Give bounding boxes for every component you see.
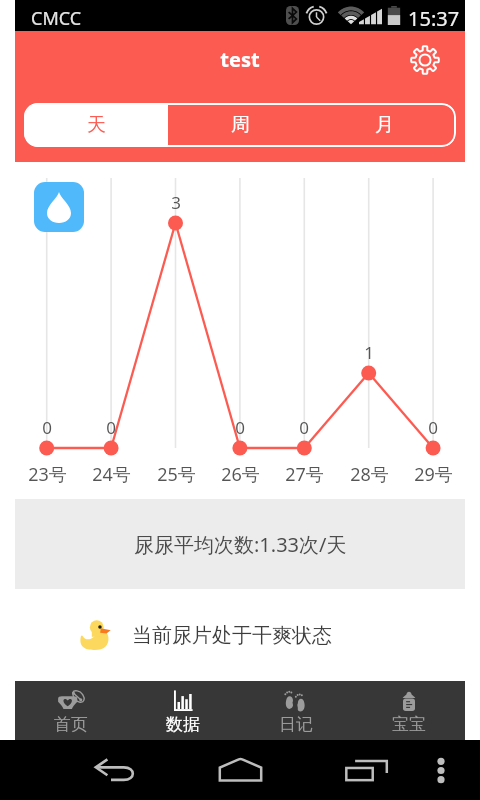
button[interactable]: 宝宝 — [352, 681, 465, 740]
staticText: 24号 — [92, 462, 131, 487]
button[interactable]: More options — [421, 746, 460, 794]
staticText: 26号 — [221, 462, 260, 487]
staticText: 1 — [364, 341, 374, 364]
staticText: 15:37 — [408, 5, 460, 32]
staticText: 当前尿片处于干爽状态 — [132, 623, 332, 648]
button[interactable]: Recents — [335, 746, 399, 794]
button[interactable]: Pee records — [34, 182, 84, 232]
button[interactable]: 月 — [312, 103, 456, 147]
staticText: 周 — [231, 113, 250, 137]
button[interactable]: Home — [208, 746, 272, 794]
button[interactable]: Back — [83, 746, 147, 794]
staticText: 首页 — [54, 714, 88, 735]
staticText: 0 — [428, 416, 438, 439]
staticText: 日记 — [279, 714, 313, 735]
staticText: CMCC — [31, 6, 82, 31]
staticText: 0 — [235, 416, 245, 439]
staticText: 0 — [299, 416, 309, 439]
button[interactable]: Settings — [400, 35, 449, 84]
staticText: 0 — [42, 416, 52, 439]
staticText: test — [15, 46, 465, 73]
staticText: 0 — [106, 416, 116, 439]
button[interactable]: 数据 — [127, 681, 239, 740]
staticText: 尿尿平均次数:1.33次/天 — [134, 531, 347, 558]
button[interactable]: 日记 — [239, 681, 352, 740]
staticText: 27号 — [285, 462, 324, 487]
staticText: 25号 — [157, 462, 196, 487]
staticText: 3 — [171, 191, 181, 214]
staticText: 宝宝 — [392, 714, 426, 735]
staticText: 数据 — [166, 714, 200, 735]
staticText: 天 — [87, 113, 106, 137]
button[interactable]: 天 — [24, 103, 168, 147]
staticText: 29号 — [414, 462, 453, 487]
button[interactable]: 周 — [168, 103, 312, 147]
staticText: 23号 — [28, 462, 67, 487]
staticText: 月 — [375, 113, 394, 137]
staticText: 28号 — [350, 462, 389, 487]
button[interactable]: 首页 — [15, 681, 127, 740]
